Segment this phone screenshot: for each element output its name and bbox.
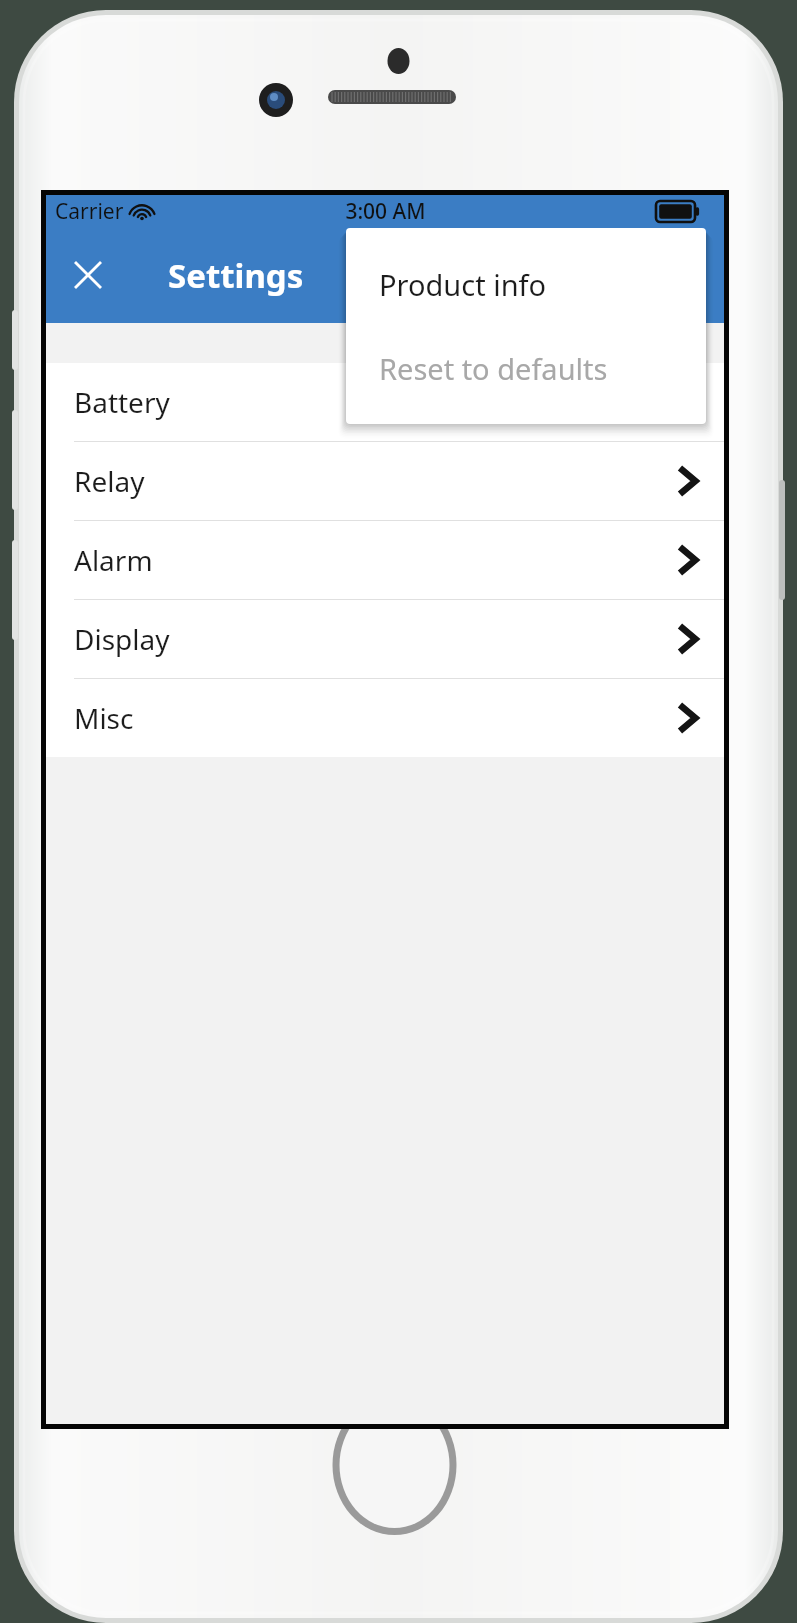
staticText: 3:00 AM bbox=[345, 197, 426, 226]
button[interactable]: Product info bbox=[346, 242, 706, 326]
button[interactable]: Relay bbox=[46, 442, 724, 520]
staticText: Alarm bbox=[74, 541, 153, 579]
button[interactable]: Misc bbox=[46, 679, 724, 757]
staticText: Product info bbox=[379, 265, 547, 304]
staticText: Display bbox=[74, 620, 170, 658]
button[interactable]: Close bbox=[59, 246, 117, 304]
button[interactable]: Alarm bbox=[46, 521, 724, 599]
button[interactable]: Battery bbox=[46, 363, 724, 441]
button[interactable]: Display bbox=[46, 600, 724, 678]
staticText: Settings bbox=[168, 253, 304, 298]
staticText: Reset to defaults bbox=[379, 349, 608, 388]
staticText: Carrier bbox=[55, 197, 124, 226]
staticText: Battery bbox=[74, 383, 170, 421]
staticText: Relay bbox=[74, 462, 145, 500]
staticText: Misc bbox=[74, 699, 134, 737]
